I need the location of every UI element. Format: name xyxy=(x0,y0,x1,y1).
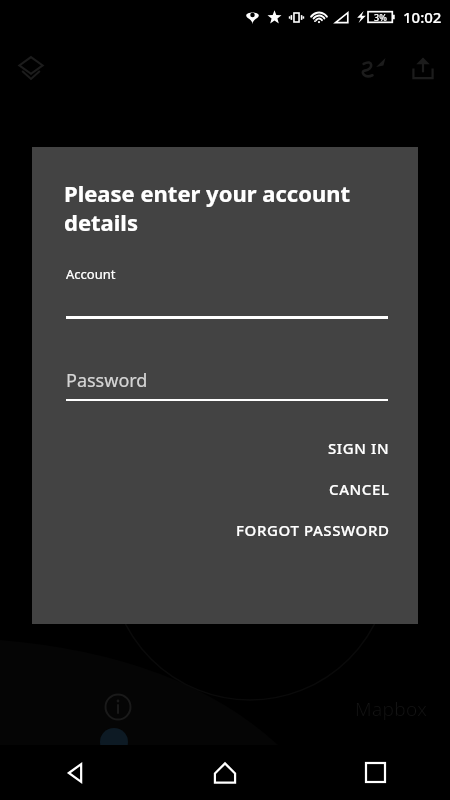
staticText: CANCEL xyxy=(329,479,390,499)
staticText: SIGN IN xyxy=(328,438,390,458)
staticText: Account xyxy=(66,265,116,283)
button[interactable]: Account xyxy=(66,265,388,319)
button[interactable]: FORGOT PASSWORD xyxy=(32,520,418,540)
button[interactable]: Back xyxy=(0,745,150,800)
staticText: Mapbox xyxy=(355,696,428,722)
staticText: 3% xyxy=(374,11,387,23)
button[interactable]: Share xyxy=(402,47,444,89)
button[interactable]: SIGN IN xyxy=(32,438,418,458)
staticText: Please enter your account details xyxy=(64,178,390,237)
button[interactable]: Draw route xyxy=(352,47,394,89)
staticText: FORGOT PASSWORD xyxy=(236,520,390,540)
staticText: 10:02 xyxy=(403,7,442,27)
button[interactable]: Password xyxy=(66,368,388,401)
button[interactable]: Map layers xyxy=(10,47,52,89)
button[interactable]: Home xyxy=(150,745,300,800)
button[interactable]: CANCEL xyxy=(32,479,418,499)
button[interactable]: Recent apps xyxy=(300,745,450,800)
staticText: Password xyxy=(66,368,148,393)
